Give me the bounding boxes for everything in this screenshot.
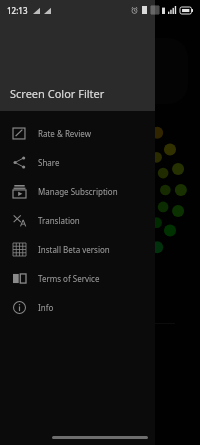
staticText: 12:13 [7, 5, 28, 16]
button[interactable]: Rate & Review [0, 119, 155, 148]
button[interactable]: Terms of Service [0, 264, 155, 293]
button[interactable]: Translation [0, 206, 155, 235]
button[interactable]: Info [0, 293, 155, 322]
button[interactable]: Install Beta version [0, 235, 155, 264]
staticText: Screen Color Filter [10, 86, 105, 101]
staticText: Manage Subscription [38, 186, 118, 197]
staticText: Install Beta version [38, 244, 110, 255]
staticText: Info [38, 302, 54, 313]
button[interactable]: Share [0, 148, 155, 177]
staticText: Translation [38, 215, 80, 226]
staticText: Rate & Review [38, 128, 91, 139]
button[interactable]: Manage Subscription [0, 177, 155, 206]
staticText: Terms of Service [38, 273, 100, 284]
staticText: Share [38, 157, 60, 168]
